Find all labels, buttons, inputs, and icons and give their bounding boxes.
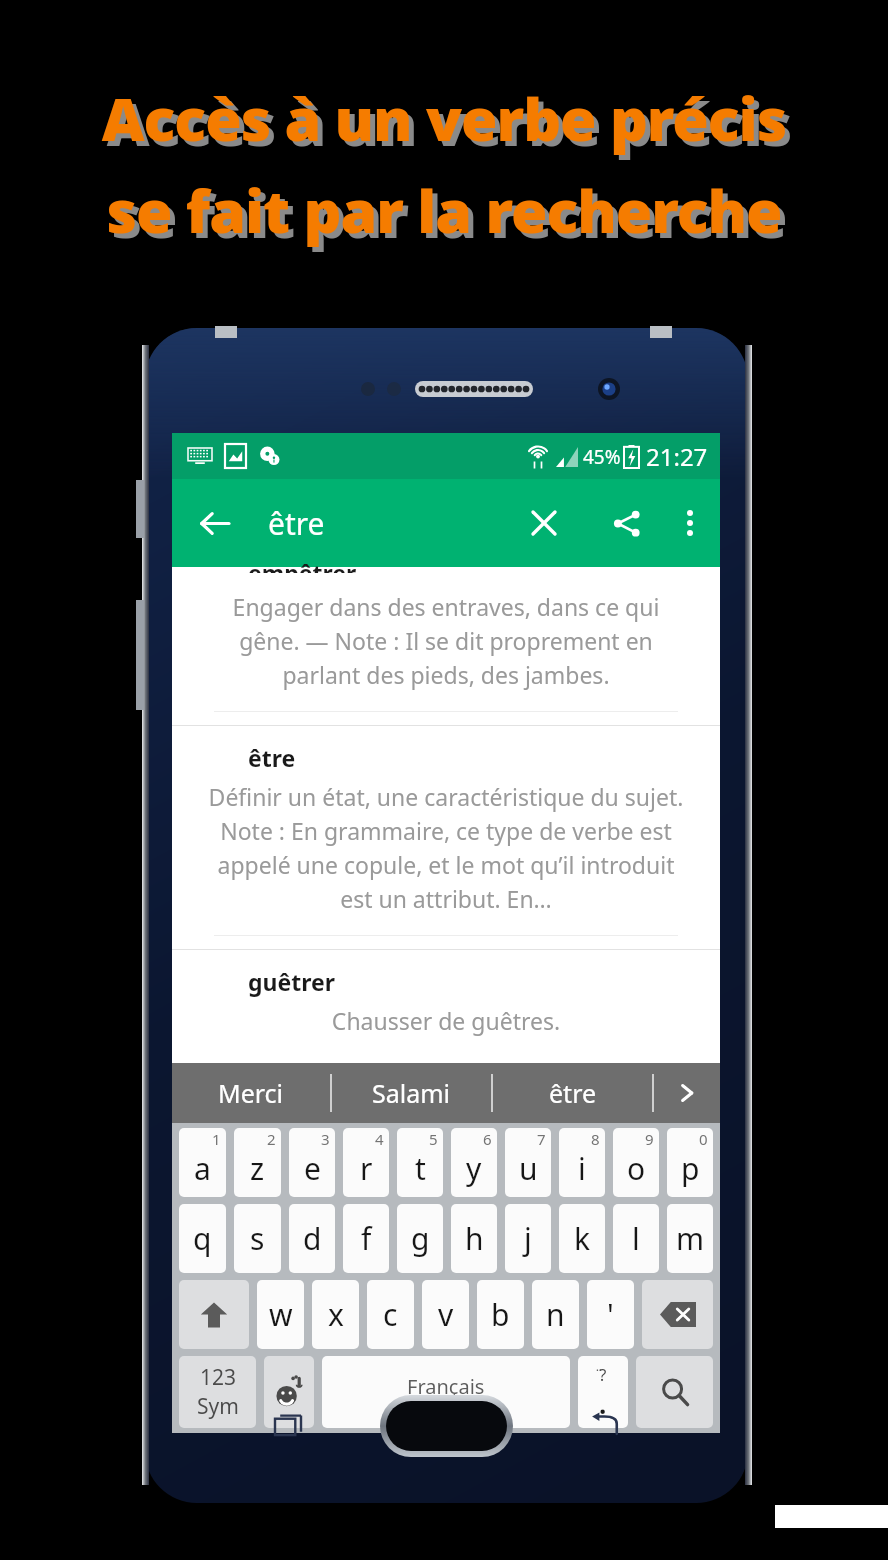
button[interactable]: empêtrer [172, 567, 720, 725]
staticText: k [574, 1218, 591, 1259]
button[interactable]: 3 [289, 1128, 335, 1197]
staticText: j [524, 1218, 532, 1259]
button[interactable]: être [493, 1063, 652, 1123]
staticText: q [193, 1218, 212, 1259]
button[interactable]: Clear [516, 495, 572, 551]
staticText: se fait par la recherche [5, 175, 888, 255]
staticText: 6 [483, 1129, 492, 1149]
button[interactable]: s [234, 1204, 281, 1273]
staticText: 2 [267, 1129, 276, 1149]
staticText: 4 [375, 1129, 384, 1149]
staticText: x [328, 1294, 344, 1335]
staticText: c [383, 1294, 398, 1335]
button[interactable]: q [179, 1204, 226, 1273]
staticText: f [361, 1218, 372, 1259]
staticText: 8 [591, 1129, 600, 1149]
staticText: être [268, 503, 325, 544]
staticText: ̈? [599, 1363, 607, 1386]
staticText: e [304, 1148, 321, 1189]
button[interactable]: d [289, 1204, 335, 1273]
button[interactable]: f [343, 1204, 389, 1273]
button[interactable]: 7 [505, 1128, 551, 1197]
button[interactable]: 9 [613, 1128, 659, 1197]
staticText: Chausser de guêtres. [202, 1005, 690, 1036]
staticText: v [438, 1294, 454, 1335]
button[interactable]: Symbols [179, 1356, 256, 1428]
staticText: Salami [372, 1076, 451, 1110]
button[interactable]: Emoji [264, 1356, 314, 1428]
button[interactable]: 4 [343, 1128, 389, 1197]
button[interactable]: m [667, 1204, 713, 1273]
button[interactable]: k [559, 1204, 605, 1273]
staticText: b [491, 1294, 510, 1335]
button[interactable]: v [422, 1280, 469, 1349]
staticText: Engager dans des entraves, dans ce qui g… [202, 591, 690, 690]
button[interactable]: Back [577, 1398, 633, 1454]
button[interactable]: Back [186, 495, 242, 551]
staticText: d [303, 1218, 322, 1259]
button[interactable]: Home [380, 1395, 513, 1457]
button[interactable]: Merci [172, 1063, 330, 1123]
button[interactable]: être [172, 726, 720, 949]
button[interactable]: 8 [559, 1128, 605, 1197]
button[interactable]: More options [664, 497, 716, 549]
staticText: ' [607, 1294, 614, 1335]
button[interactable]: Français [322, 1356, 570, 1428]
button[interactable]: Search [636, 1356, 713, 1428]
button[interactable]: 0 [667, 1128, 713, 1197]
button[interactable]: n [532, 1280, 579, 1349]
staticText: a [194, 1148, 211, 1189]
button[interactable]: Salami [332, 1063, 491, 1123]
staticText: n [546, 1294, 565, 1335]
button[interactable]: guêtrer [172, 950, 720, 1063]
staticText: être [549, 1076, 597, 1110]
button[interactable]: Backspace [642, 1280, 713, 1349]
staticText: w [269, 1294, 293, 1335]
button[interactable]: Recents [260, 1398, 316, 1454]
button[interactable]: ' [587, 1280, 634, 1349]
staticText: g [411, 1218, 430, 1259]
staticText: 5 [429, 1129, 438, 1149]
staticText: être [248, 742, 296, 773]
button[interactable]: x [312, 1280, 359, 1349]
staticText: 45% [583, 444, 621, 470]
staticText: 3 [321, 1129, 330, 1149]
staticText: z [250, 1148, 265, 1189]
button[interactable]: 6 [451, 1128, 497, 1197]
staticText: p [681, 1148, 700, 1189]
staticText: 1 [212, 1129, 221, 1149]
button[interactable]: b [477, 1280, 524, 1349]
button[interactable]: h [451, 1204, 497, 1273]
staticText: o [627, 1148, 646, 1189]
button[interactable]: 5 [397, 1128, 443, 1197]
button[interactable]: j [505, 1204, 551, 1273]
staticText: u [519, 1148, 538, 1189]
staticText: t [415, 1148, 426, 1189]
button[interactable]: 2 [234, 1128, 281, 1197]
staticText: . [599, 1386, 607, 1421]
staticText: s [250, 1218, 265, 1259]
staticText: 21:27 [646, 440, 708, 473]
staticText: m [676, 1218, 705, 1259]
staticText: empêtrer [248, 557, 357, 573]
button[interactable]: Shift [179, 1280, 249, 1349]
button[interactable]: Period [578, 1356, 628, 1428]
button[interactable]: More suggestions [654, 1063, 720, 1123]
staticText: 123 [200, 1363, 237, 1392]
button[interactable]: Share [598, 495, 654, 551]
staticText: 9 [645, 1129, 654, 1149]
button[interactable]: g [397, 1204, 443, 1273]
button[interactable]: w [257, 1280, 304, 1349]
button[interactable]: l [613, 1204, 659, 1273]
staticText: Accès à un verbe précis [5, 83, 888, 163]
staticText: y [466, 1148, 482, 1189]
button[interactable]: 1 [179, 1128, 226, 1197]
staticText: Français [407, 1373, 485, 1400]
staticText: 0 [699, 1129, 708, 1149]
button[interactable]: c [367, 1280, 414, 1349]
staticText: l [632, 1218, 640, 1259]
staticText: Sym [197, 1392, 239, 1421]
staticText: 7 [537, 1129, 546, 1149]
staticText: i [578, 1148, 586, 1189]
staticText: r [360, 1148, 373, 1189]
